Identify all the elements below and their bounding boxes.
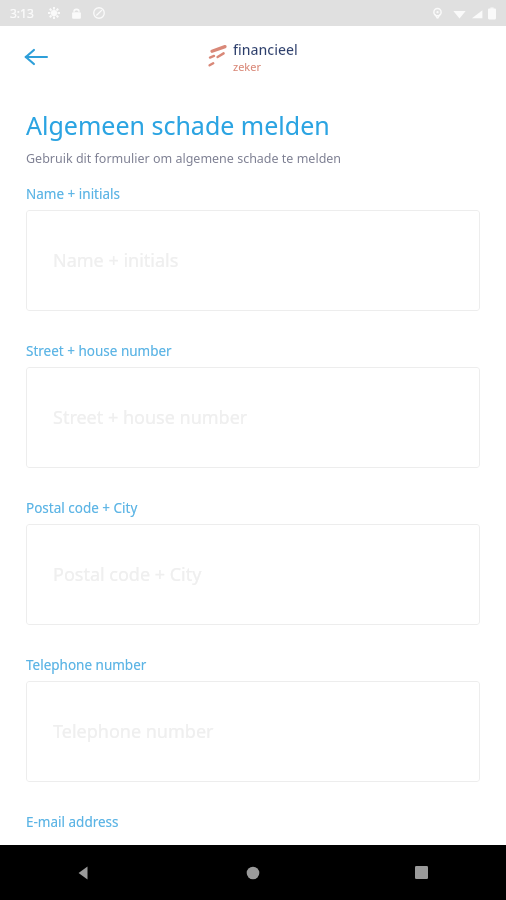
staticText: Street + house number — [26, 342, 172, 360]
staticText: Postal code + City — [53, 562, 202, 587]
button[interactable]: Name + initials — [26, 210, 480, 311]
button[interactable]: Back — [0, 845, 168, 900]
staticText: Algemeen schade melden — [26, 108, 330, 142]
staticText: Name + initials — [53, 248, 179, 273]
staticText: E-mail address — [26, 813, 119, 831]
button[interactable]: Back — [14, 35, 58, 79]
staticText: financieel — [233, 40, 298, 59]
staticText: zeker — [233, 59, 261, 74]
button[interactable]: Postal code + City — [26, 524, 480, 625]
button[interactable]: Telephone number — [26, 681, 480, 782]
staticText: Street + house number — [53, 405, 248, 430]
button[interactable]: Street + house number — [26, 367, 480, 468]
button[interactable]: Recent apps — [337, 845, 506, 900]
staticText: Telephone number — [26, 656, 147, 674]
staticText: Postal code + City — [26, 499, 138, 517]
staticText: Name + initials — [26, 185, 121, 203]
button[interactable]: Home — [168, 845, 337, 900]
staticText: Gebruik dit formulier om algemene schade… — [26, 150, 342, 167]
staticText: Telephone number — [53, 719, 214, 744]
staticText: 3:13 — [10, 5, 34, 21]
